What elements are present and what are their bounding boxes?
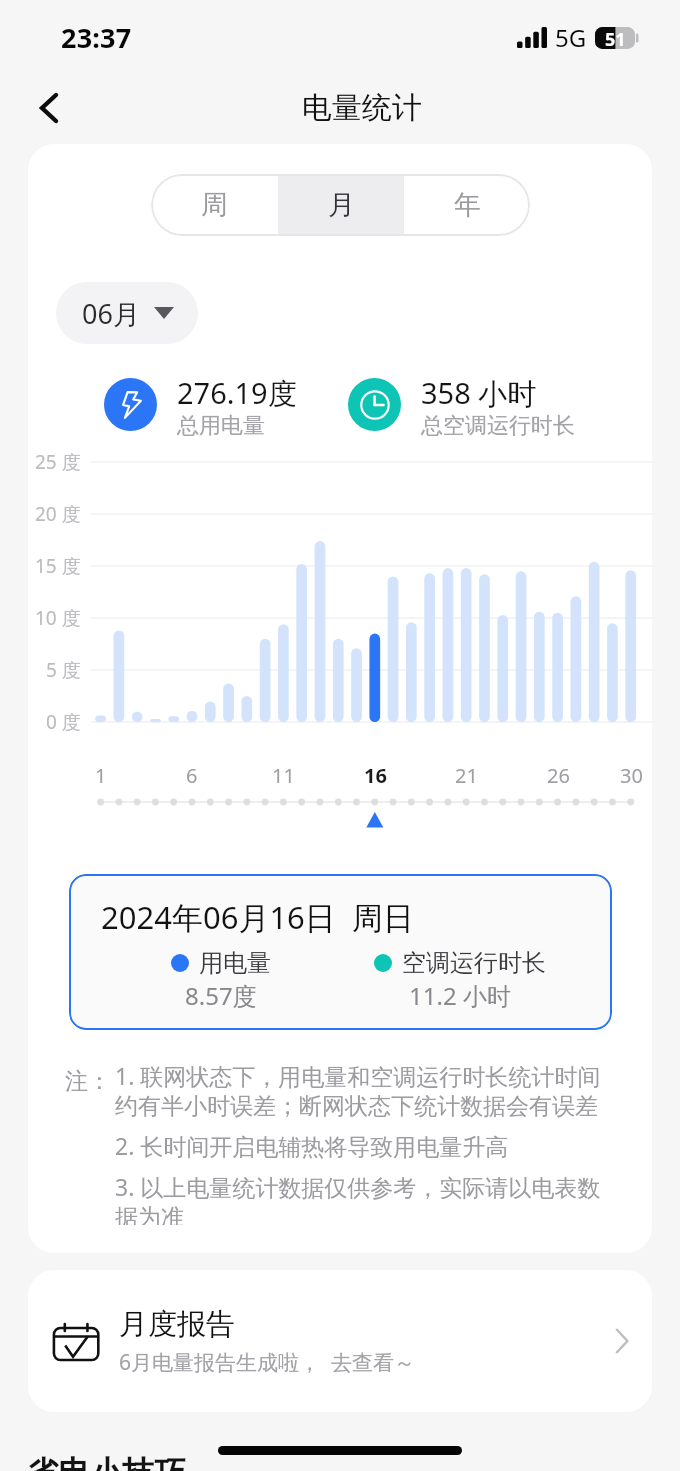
staticText: 5 度 (46, 657, 81, 683)
staticText: 电量统计 (302, 89, 422, 127)
staticText: 20 度 (35, 501, 81, 527)
staticText: 11 (272, 762, 295, 789)
staticText: 2. 长时间开启电辅热将导致用电量升高 (115, 1130, 509, 1161)
staticText: 3. 以上电量统计数据仅供参考，实际请以电表数据为准 (115, 1171, 607, 1225)
staticText: 26 (547, 762, 570, 789)
staticText: 21 (455, 762, 478, 789)
staticText: 51 (605, 27, 626, 49)
button[interactable]: 06月 (56, 282, 198, 344)
button[interactable]: 2024年06月16日 周日 (69, 874, 612, 1030)
button[interactable]: 月度报告 (28, 1270, 652, 1412)
staticText: 年 (454, 188, 481, 222)
button[interactable]: Back (24, 83, 74, 133)
staticText: 0 度 (46, 709, 81, 735)
staticText: 10 度 (35, 605, 81, 631)
staticText: 6月电量报告生成啦， 去查看～ (119, 1348, 415, 1377)
staticText: 总用电量 (177, 412, 265, 438)
staticText: 6 (186, 762, 198, 789)
other: Open monthly report (615, 1329, 628, 1353)
staticText: 2024年06月16日 周日 (101, 896, 414, 938)
button[interactable]: 月 (278, 174, 404, 236)
staticText: 月 (328, 188, 355, 222)
staticText: 1. 联网状态下，用电量和空调运行时长统计时间约有半小时误差；断网状态下统计数据… (115, 1060, 607, 1120)
staticText: 5G (555, 21, 587, 54)
staticText: 用电量 (199, 948, 271, 978)
staticText: 总空调运行时长 (421, 412, 575, 438)
staticText: 注： (65, 1067, 111, 1096)
staticText: 358 小时 (421, 373, 537, 413)
staticText: 11.2 小时 (409, 979, 511, 1012)
staticText: 8.57度 (185, 979, 257, 1012)
staticText: 25 度 (35, 449, 81, 475)
staticText: 周 (201, 188, 228, 222)
staticText: 30 (620, 762, 643, 789)
staticText: 06月 (82, 295, 140, 332)
staticText: 省电小技巧 (26, 1453, 186, 1471)
staticText: 23:37 (61, 19, 132, 56)
staticText: 月度报告 (119, 1306, 235, 1343)
staticText: 16 (364, 762, 387, 789)
staticText: 276.19度 (177, 373, 297, 413)
staticText: 15 度 (35, 553, 81, 579)
button[interactable]: 年 (404, 174, 530, 236)
button[interactable]: 周 (151, 174, 278, 236)
staticText: 空调运行时长 (402, 948, 546, 978)
staticText: 1 (95, 762, 107, 789)
